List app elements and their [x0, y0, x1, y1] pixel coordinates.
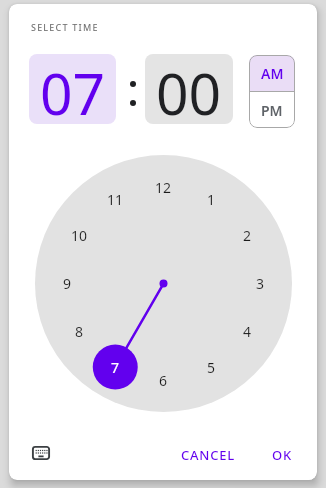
- button[interactable]: OK: [262, 440, 302, 470]
- staticText: 3: [256, 274, 265, 293]
- button[interactable]: PM: [249, 92, 295, 128]
- button[interactable]: 5: [197, 353, 225, 381]
- button[interactable]: 4: [233, 317, 261, 345]
- staticText: 6: [159, 371, 168, 390]
- staticText: 4: [243, 322, 252, 341]
- button[interactable]: 00: [145, 54, 233, 124]
- staticText: 9: [63, 274, 72, 293]
- staticText: 11: [107, 190, 124, 209]
- staticText: 07: [40, 54, 106, 124]
- staticText: 7: [111, 358, 120, 377]
- staticText: SELECT TIME: [31, 21, 99, 33]
- staticText: OK: [272, 446, 293, 464]
- staticText: 00: [156, 54, 222, 124]
- staticText: 12: [155, 178, 172, 197]
- staticText: 1: [207, 190, 216, 209]
- staticText: 2: [243, 226, 252, 245]
- staticText: 5: [207, 358, 216, 377]
- button[interactable]: 10: [65, 221, 93, 249]
- staticText: AM: [261, 64, 284, 83]
- button[interactable]: 8: [65, 317, 93, 345]
- button[interactable]: 11: [101, 185, 129, 213]
- staticText: PM: [261, 101, 283, 120]
- staticText: 10: [71, 226, 88, 245]
- button[interactable]: 9: [53, 269, 81, 297]
- button[interactable]: 1: [197, 185, 225, 213]
- button[interactable]: 12: [149, 173, 177, 201]
- button[interactable]: 7: [101, 353, 129, 381]
- staticText: CANCEL: [181, 446, 236, 464]
- button[interactable]: 6: [149, 366, 177, 394]
- button[interactable]: 2: [233, 221, 261, 249]
- button[interactable]: 07: [29, 54, 116, 124]
- staticText: 8: [75, 322, 84, 341]
- button[interactable]: 3: [246, 269, 274, 297]
- button[interactable]: CANCEL: [178, 440, 238, 470]
- button[interactable]: [21, 433, 61, 473]
- button[interactable]: AM: [249, 55, 295, 91]
